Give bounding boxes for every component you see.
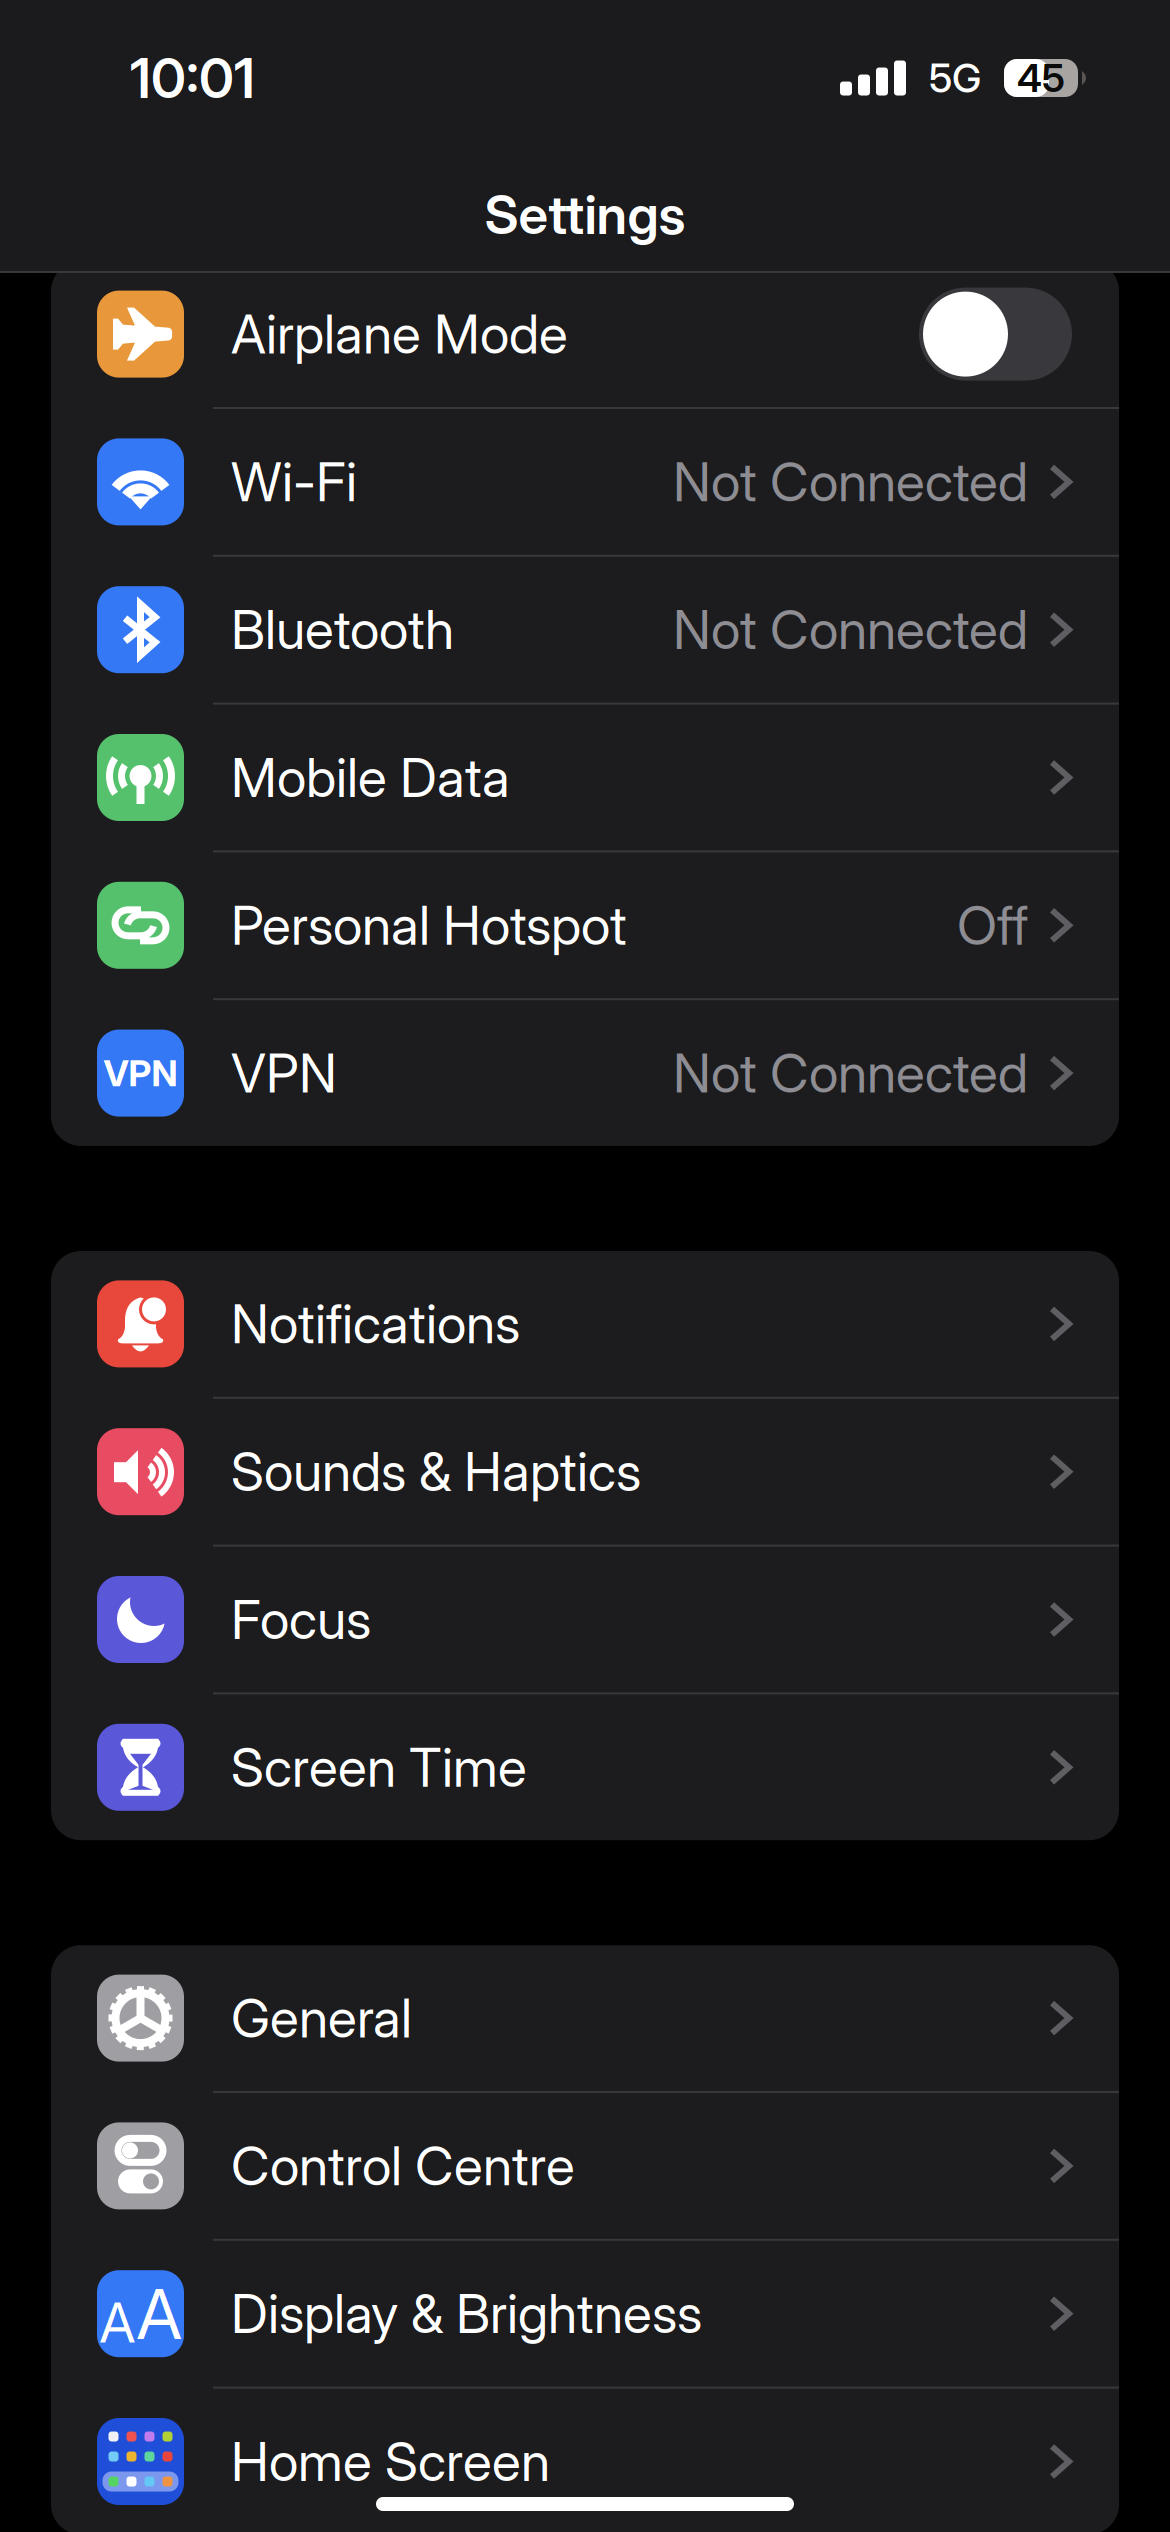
staticText: Settings [484,182,685,247]
staticText: Notifications [231,1292,520,1356]
staticText: A [136,2272,181,2356]
staticText: Mobile Data [231,745,510,810]
staticText: 5G [929,54,981,102]
staticText: Focus [231,1587,371,1652]
staticText: A [99,2289,135,2356]
staticText: Home Screen [231,2429,550,2494]
button[interactable]: Screen Time [51,1694,1119,1840]
staticText: Personal Hotspot [231,893,627,957]
staticText: Not Connected [673,1041,1028,1105]
staticText: 45 [1017,55,1065,101]
staticText: VPN [103,1051,177,1095]
staticText: Not Connected [673,597,1028,662]
button[interactable]: Notifications [51,1251,1119,1397]
staticText: Screen Time [231,1735,527,1799]
staticText: Display & Brightness [231,2281,702,2346]
button[interactable]: Focus [51,1547,1119,1692]
staticText: Not Connected [673,450,1028,514]
staticText: 10:01 [130,45,255,111]
staticText: General [231,1986,412,2050]
button[interactable]: Sounds & Haptics [51,1399,1119,1545]
button[interactable]: Personal Hotspot [51,852,1119,998]
staticText: Off [957,893,1028,957]
staticText: Airplane Mode [231,302,568,366]
staticText: Bluetooth [231,597,454,662]
staticText: Wi-Fi [231,450,357,514]
staticText: Sounds & Haptics [231,1439,641,1504]
button[interactable]: Wi-Fi [51,409,1119,555]
button[interactable]: VPN [51,1000,1119,1146]
button[interactable]: Airplane Mode [51,261,1119,407]
button[interactable]: Home Screen [51,2389,1119,2532]
staticText: VPN [231,1041,337,1105]
button[interactable]: Bluetooth [51,557,1119,703]
button[interactable]: Mobile Data [51,705,1119,850]
button[interactable]: Control Centre [51,2093,1119,2239]
button[interactable]: General [51,1945,1119,2091]
button[interactable]: A [51,2241,1119,2387]
staticText: Control Centre [231,2134,575,2198]
